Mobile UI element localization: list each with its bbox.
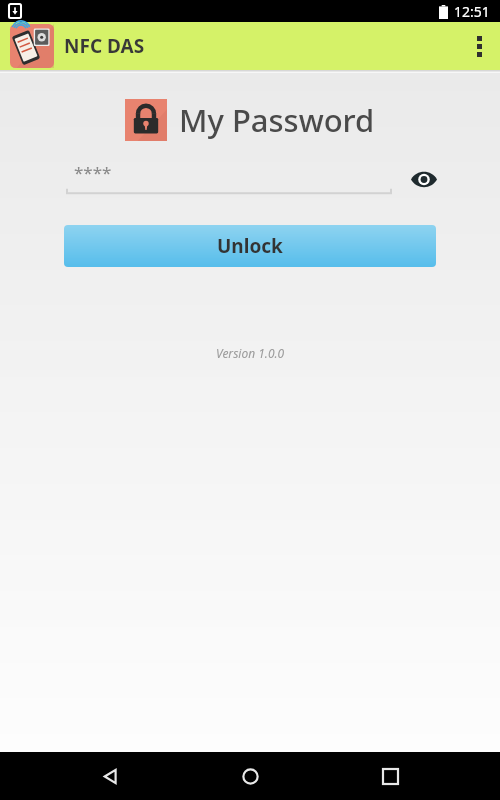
staticText: Unlock: [217, 233, 283, 259]
button[interactable]: Unlock: [64, 225, 436, 267]
button[interactable]: Home: [220, 752, 280, 800]
button[interactable]: More options: [458, 22, 500, 70]
staticText: ****: [74, 161, 112, 184]
staticText: NFC DAS: [64, 33, 145, 59]
button[interactable]: Recents: [360, 752, 420, 800]
button[interactable]: Back: [80, 752, 140, 800]
button[interactable]: ****: [66, 161, 392, 197]
staticText: Version 1.0.0: [216, 345, 285, 361]
staticText: My Password: [179, 99, 375, 141]
button[interactable]: Show password: [406, 161, 442, 197]
staticText: 12:51: [454, 2, 490, 21]
